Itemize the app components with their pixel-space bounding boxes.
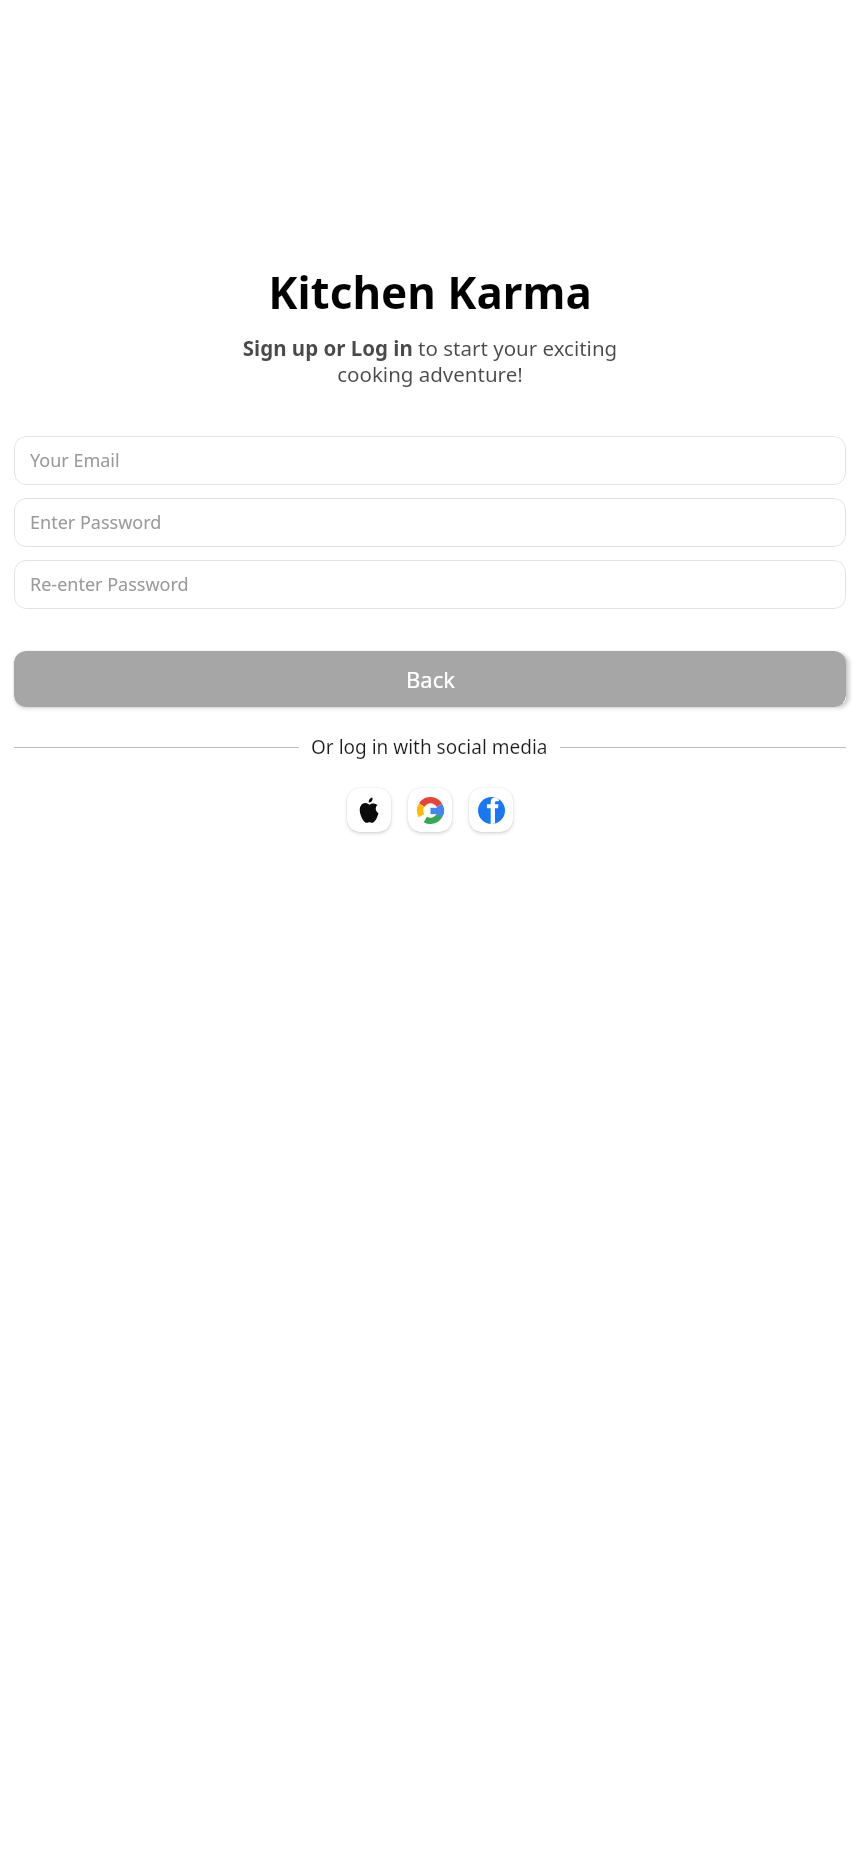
button[interactable]: Sign in with Apple bbox=[347, 788, 391, 832]
staticText: Enter Password bbox=[30, 510, 162, 535]
button[interactable]: Enter Password bbox=[14, 498, 846, 547]
button[interactable]: Sign in with Google bbox=[408, 788, 452, 832]
button[interactable]: Sign in with Facebook bbox=[469, 788, 513, 832]
button[interactable]: Your Email bbox=[14, 436, 846, 485]
staticText: Back bbox=[406, 664, 455, 694]
button[interactable]: Back bbox=[14, 651, 846, 707]
staticText: Sign up or Log in to start your exciting… bbox=[220, 334, 640, 388]
staticText: Or log in with social media bbox=[311, 734, 548, 760]
staticText: Re-enter Password bbox=[30, 572, 189, 597]
staticText: Your Email bbox=[30, 448, 120, 473]
staticText: Kitchen Karma bbox=[268, 262, 592, 322]
button[interactable]: Re-enter Password bbox=[14, 560, 846, 609]
